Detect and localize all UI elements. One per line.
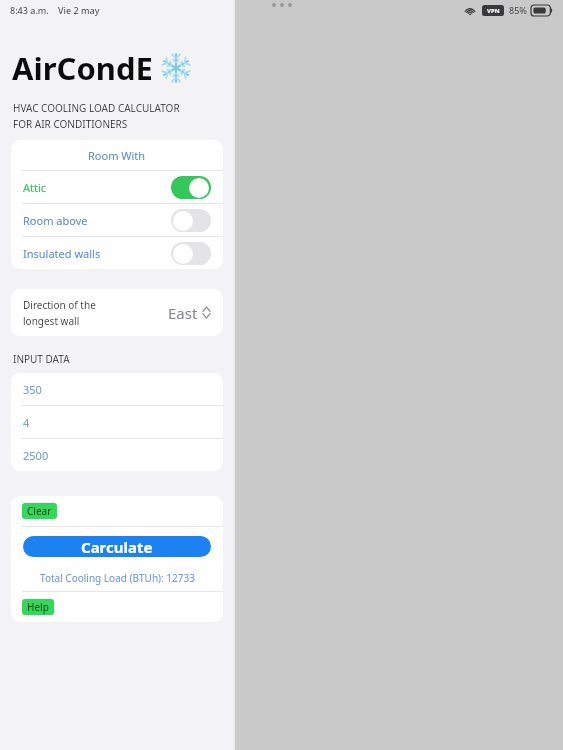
staticText: Clear: [27, 504, 52, 518]
button[interactable]: 4: [11, 406, 223, 438]
staticText: AirCondE: [12, 47, 153, 89]
staticText: Room above: [23, 213, 88, 228]
button[interactable]: Toggle off: [171, 242, 211, 265]
staticText: Direction of the: [23, 298, 96, 312]
staticText: Vie 2 may: [58, 4, 100, 16]
staticText: VPN: [487, 7, 500, 15]
staticText: Total Cooling Load (BTUh): 12733: [40, 571, 195, 585]
button[interactable]: Carculate: [23, 536, 211, 557]
staticText: Carculate: [81, 537, 153, 557]
staticText: HVAC COOLING LOAD CALCULATOR: [13, 101, 180, 115]
staticText: 85%: [509, 4, 527, 16]
button[interactable]: 2500: [11, 439, 223, 471]
staticText: East: [168, 303, 198, 323]
staticText: 350: [23, 382, 42, 397]
button[interactable]: Toggle on: [171, 176, 211, 199]
button[interactable]: Attic: [11, 171, 223, 203]
staticText: 2500: [23, 448, 49, 463]
button[interactable]: Direction of the: [11, 289, 223, 336]
button[interactable]: 350: [11, 373, 223, 405]
staticText: Attic: [23, 180, 47, 195]
staticText: Help: [27, 600, 49, 614]
staticText: longest wall: [23, 314, 80, 328]
staticText: FOR AIR CONDITIONERS: [13, 117, 128, 131]
staticText: 8:43 a.m.: [10, 4, 49, 16]
other: Snowflake: [161, 53, 191, 83]
button[interactable]: Clear: [22, 503, 57, 519]
staticText: 4: [23, 415, 30, 430]
staticText: INPUT DATA: [13, 352, 70, 366]
staticText: Room With: [88, 148, 146, 163]
button[interactable]: Insulated walls: [11, 237, 223, 269]
staticText: Insulated walls: [23, 246, 101, 261]
button[interactable]: Help: [22, 599, 54, 615]
button[interactable]: Toggle off: [171, 209, 211, 232]
button[interactable]: Room above: [11, 204, 223, 236]
